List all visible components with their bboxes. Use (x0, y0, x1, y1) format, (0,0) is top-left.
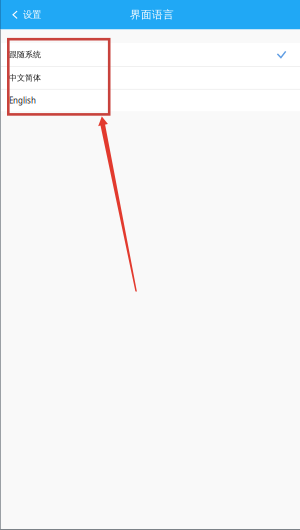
button[interactable]: 设置 (0, 0, 51, 29)
staticText: English (9, 95, 36, 106)
button[interactable]: English (0, 90, 300, 111)
button[interactable]: 中文简体 (0, 67, 300, 90)
staticText: 跟随系统 (9, 50, 41, 59)
staticText: 设置 (23, 9, 41, 20)
staticText: 中文简体 (9, 73, 41, 83)
staticText: 界面语言 (130, 8, 174, 21)
button[interactable]: 跟随系统 (0, 43, 300, 67)
